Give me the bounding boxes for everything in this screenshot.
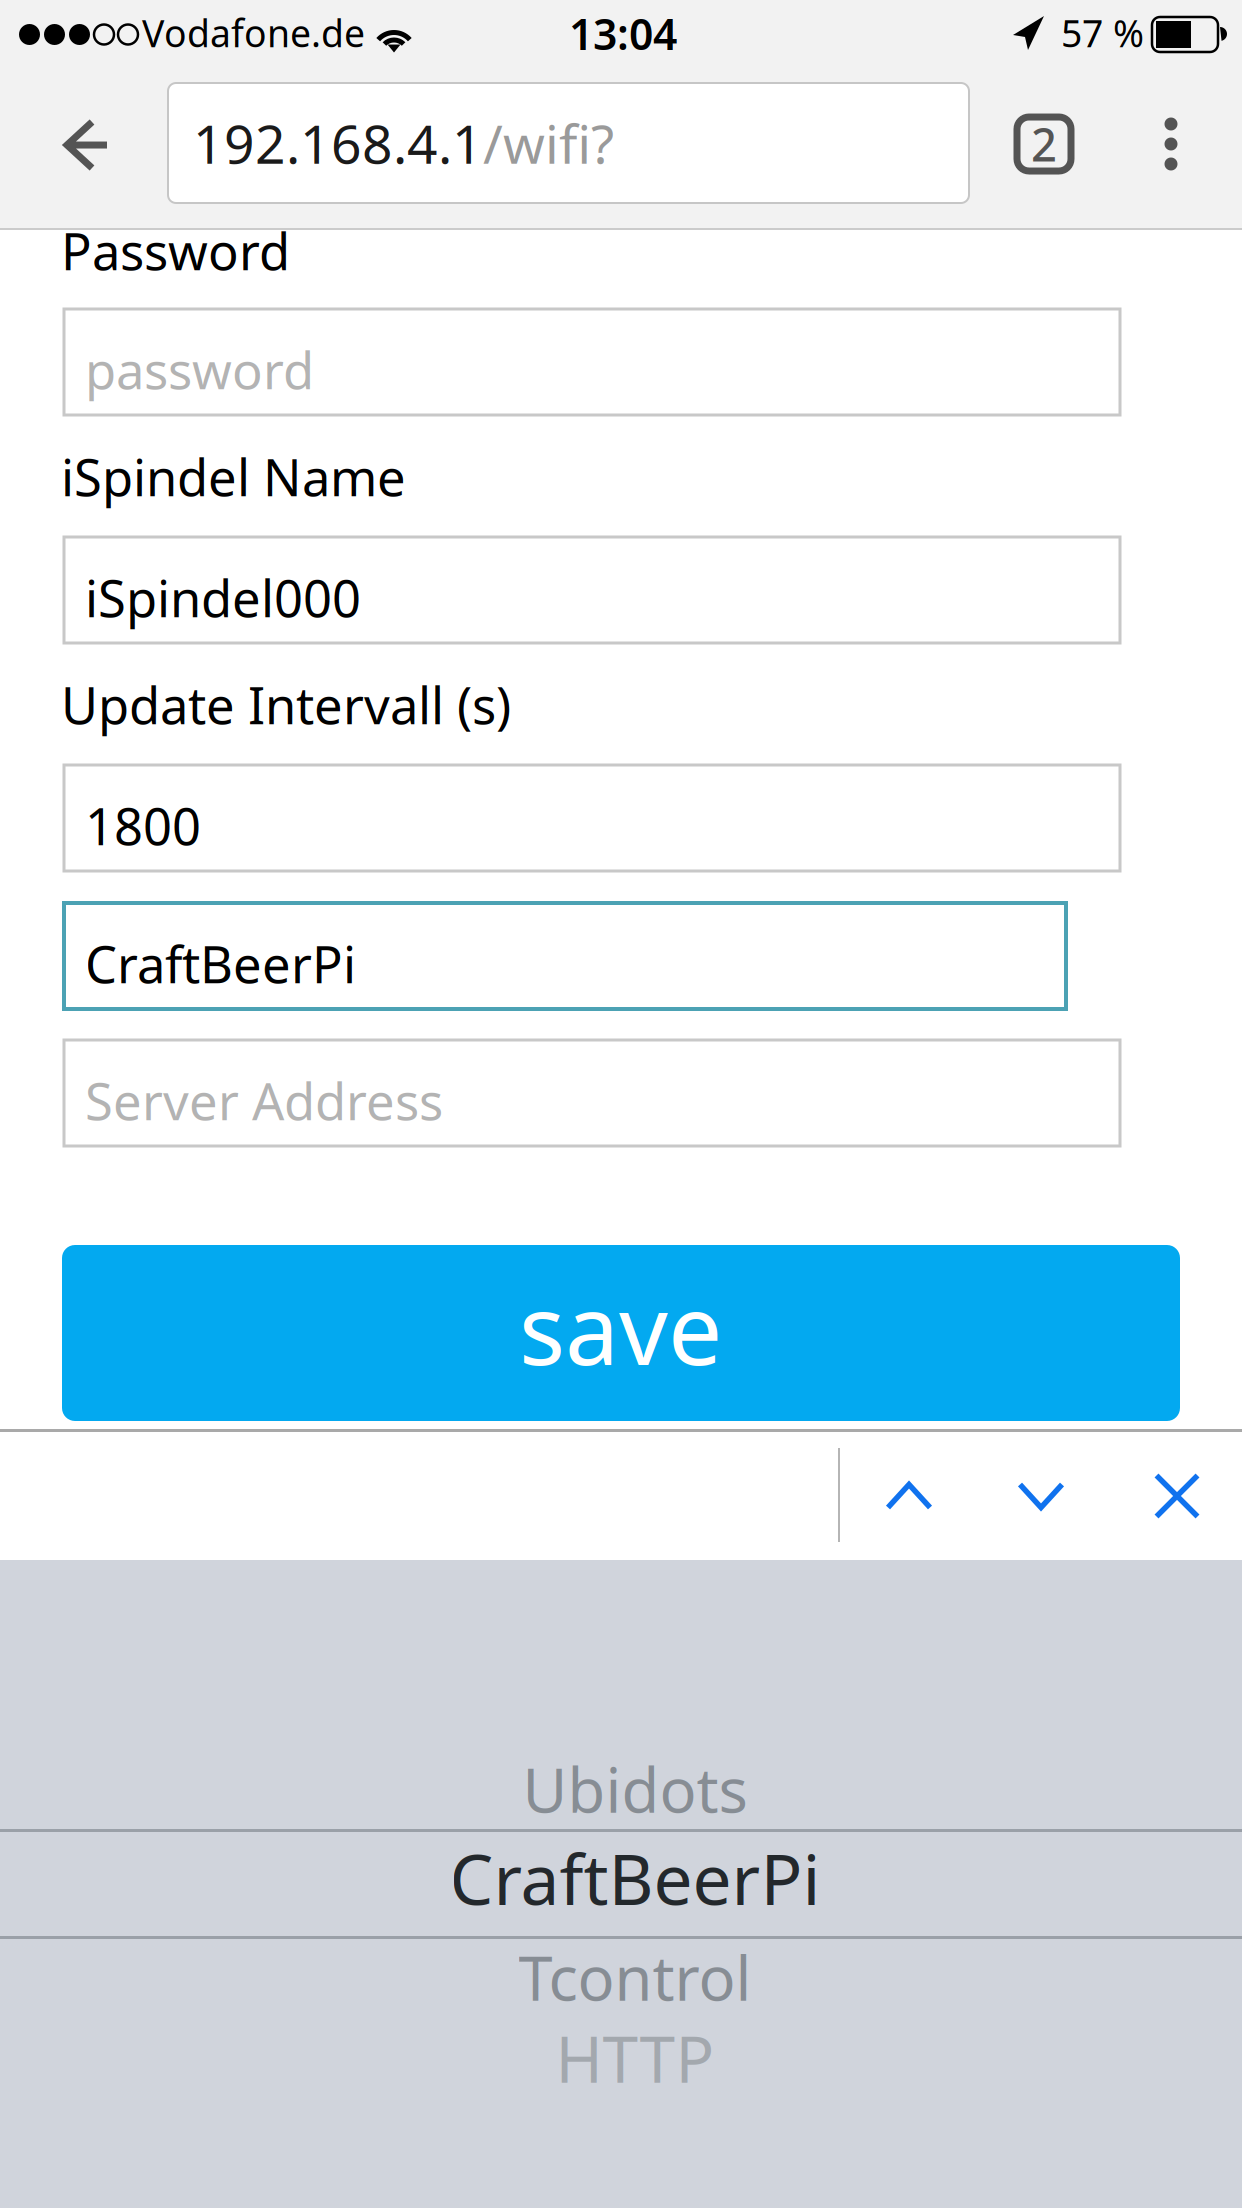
staticText: Password	[61, 217, 290, 284]
staticText: 2	[1031, 114, 1057, 174]
button[interactable]: Previous field	[843, 1432, 975, 1560]
button[interactable]: 192.168.4.1	[168, 83, 969, 203]
staticText: 1800	[85, 792, 201, 859]
staticText: Update Intervall (s)	[61, 671, 511, 738]
button[interactable]: Next field	[975, 1432, 1107, 1560]
button[interactable]: Back	[22, 70, 152, 220]
staticText: 13:04	[569, 5, 677, 62]
staticText: iSpindel000	[85, 564, 361, 631]
button[interactable]: Done	[1111, 1432, 1242, 1560]
staticText: CraftBeerPi	[85, 930, 356, 997]
button[interactable]: save	[62, 1245, 1180, 1421]
staticText: 57 %	[1061, 8, 1144, 58]
button[interactable]: Tcontrol	[14, 1933, 1242, 2021]
staticText: Server Address	[85, 1067, 443, 1134]
staticText: 192.168.4.1	[193, 108, 483, 178]
staticText: /wifi?	[483, 108, 614, 178]
staticText: password	[85, 336, 314, 403]
staticText: save	[519, 1264, 722, 1391]
button[interactable]: HTTP	[14, 2017, 1242, 2099]
staticText: CraftBeerPi	[449, 1832, 820, 1924]
staticText: HTTP	[555, 2015, 714, 2100]
button[interactable]: Menu	[1115, 79, 1227, 209]
button[interactable]: CraftBeerPi	[64, 903, 1066, 1009]
staticText: Ubidots	[522, 1748, 747, 1830]
staticText: iSpindel Name	[61, 443, 406, 510]
button[interactable]: Ubidots	[14, 1745, 1242, 1833]
staticText: Vodafone.de	[142, 8, 365, 58]
staticText: Tcontrol	[518, 1936, 751, 2018]
button[interactable]: CraftBeerPi	[14, 1826, 1242, 1930]
button[interactable]: Tabs	[988, 79, 1100, 209]
